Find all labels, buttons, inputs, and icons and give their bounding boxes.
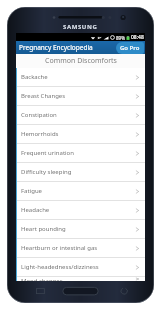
staticText: Pregnancy Encyclopedia — [19, 43, 93, 52]
staticText: Backache — [21, 73, 48, 81]
button[interactable]: Headache — [17, 201, 145, 219]
staticText: Frequent urination — [21, 149, 74, 157]
staticText: 08:48 — [131, 34, 144, 41]
button[interactable]: Go Pro — [116, 42, 144, 54]
staticText: Hemorrhoids — [21, 130, 59, 138]
staticText: Fatigue — [21, 187, 42, 195]
button[interactable]: Heartburn or intestinal gas — [17, 239, 145, 257]
button[interactable]: Heart pounding — [17, 220, 145, 238]
button[interactable]: Fatigue — [17, 182, 145, 200]
button[interactable]: Difficulty sleeping — [17, 163, 145, 181]
staticText: SAMSUNG — [63, 23, 98, 31]
button[interactable]: Mood changes — [17, 277, 145, 281]
button[interactable]: Frequent urination — [17, 144, 145, 162]
button[interactable]: Hemorrhoids — [17, 125, 145, 143]
staticText: Breast Changes — [21, 92, 66, 100]
staticText: 89% — [116, 35, 125, 41]
button[interactable]: Light-headedness/dizziness — [17, 258, 145, 276]
button[interactable]: Backache — [17, 68, 145, 86]
staticText: Heartburn or intestinal gas — [21, 244, 98, 252]
button[interactable]: Constipation — [17, 106, 145, 124]
staticText: Headache — [21, 206, 50, 214]
staticText: Common Discomforts — [45, 56, 117, 66]
staticText: Constipation — [21, 111, 57, 119]
staticText: Difficulty sleeping — [21, 168, 72, 176]
staticText: Mood changes — [21, 277, 63, 281]
staticText: Light-headedness/dizziness — [21, 263, 99, 271]
staticText: Heart pounding — [21, 225, 66, 233]
staticText: Go Pro — [120, 44, 140, 52]
button[interactable]: Breast Changes — [17, 87, 145, 105]
